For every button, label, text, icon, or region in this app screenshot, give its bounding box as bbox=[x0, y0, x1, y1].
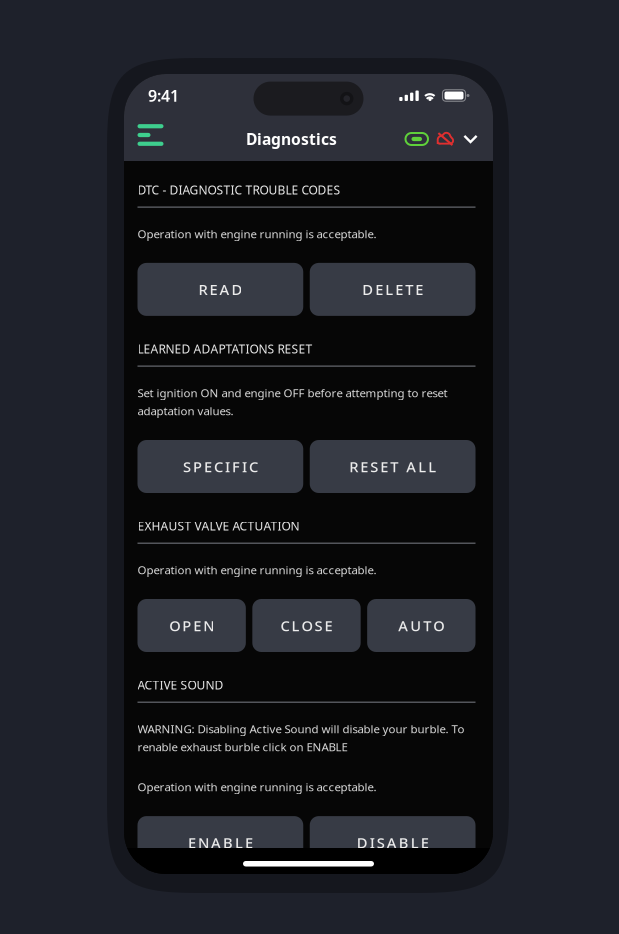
staticText: Operation with engine running is accepta… bbox=[137, 226, 376, 241]
staticText: Set ignition ON and engine OFF before at… bbox=[137, 385, 447, 400]
button[interactable]: D I S A B L E bbox=[310, 816, 476, 869]
button[interactable]: R E A D bbox=[137, 263, 303, 316]
button[interactable]: S P E C I F I C bbox=[137, 440, 303, 493]
staticText: EXHAUST VALVE ACTUATION bbox=[137, 518, 299, 534]
staticText: LEARNED ADAPTATIONS RESET bbox=[137, 341, 312, 357]
staticText: 9:41 bbox=[148, 85, 179, 106]
staticText: ACTIVE SOUND bbox=[137, 677, 223, 693]
staticText: Operation with engine running is accepta… bbox=[137, 562, 376, 578]
button[interactable]: C L O S E bbox=[252, 599, 361, 652]
button[interactable]: Menu bbox=[124, 117, 177, 161]
staticText: R E A D bbox=[198, 280, 242, 299]
staticText: A U T O bbox=[398, 616, 444, 635]
button[interactable]: D E L E T E bbox=[310, 263, 476, 316]
staticText: O P E N bbox=[169, 616, 214, 635]
staticText: adaptation values. bbox=[137, 403, 233, 419]
button[interactable]: E N A B L E bbox=[137, 816, 303, 869]
staticText: Diagnostics bbox=[246, 128, 337, 150]
staticText: WARNING: Disabling Active Sound will dis… bbox=[137, 721, 464, 737]
staticText: D E L E T E bbox=[362, 280, 423, 299]
staticText: R E S E T A L L bbox=[349, 457, 436, 476]
staticText: DTC - DIAGNOSTIC TROUBLE CODES bbox=[137, 182, 340, 198]
staticText: C L O S E bbox=[280, 616, 332, 635]
button[interactable]: O P E N bbox=[137, 599, 246, 652]
staticText: S P E C I F I C bbox=[183, 457, 258, 476]
staticText: E N A B L E bbox=[188, 833, 253, 852]
staticText: Operation with engine running is accepta… bbox=[137, 779, 376, 795]
button[interactable]: Expand connection status bbox=[463, 130, 478, 147]
button[interactable]: R E S E T A L L bbox=[310, 440, 476, 493]
staticText: renable exhaust burble click on ENABLE bbox=[137, 739, 347, 755]
button[interactable]: A U T O bbox=[367, 599, 475, 652]
staticText: D I S A B L E bbox=[357, 833, 429, 852]
